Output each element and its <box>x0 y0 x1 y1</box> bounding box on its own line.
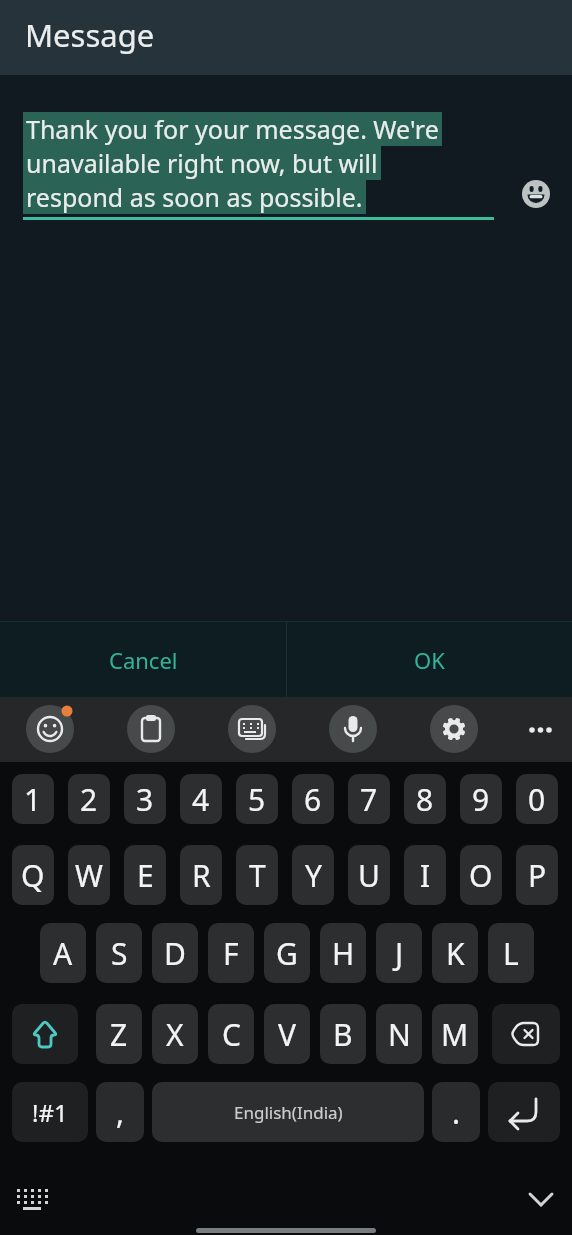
staticText: 3 <box>136 779 154 820</box>
staticText: P <box>528 855 547 896</box>
button[interactable] <box>492 1004 560 1064</box>
button[interactable] <box>228 705 276 753</box>
staticText: unavailable right now, but will <box>26 146 378 180</box>
button[interactable]: 6 <box>292 774 334 824</box>
button[interactable]: U <box>348 845 390 905</box>
staticText: U <box>358 855 380 896</box>
button[interactable]: W <box>68 845 110 905</box>
staticText: O <box>469 855 493 896</box>
staticText: 8 <box>416 779 434 820</box>
staticText: 0 <box>528 779 546 820</box>
button[interactable]: Y <box>292 845 334 905</box>
button[interactable] <box>12 1004 78 1064</box>
staticText: 7 <box>360 779 378 820</box>
button[interactable]: OK <box>287 622 572 697</box>
button[interactable]: Cancel <box>0 622 286 697</box>
staticText: Cancel <box>109 645 178 675</box>
staticText: S <box>111 933 128 974</box>
staticText: G <box>276 933 298 974</box>
staticText: OK <box>414 645 445 675</box>
staticText: Thank you for your message. We're <box>26 112 439 146</box>
button[interactable]: 4 <box>180 774 222 824</box>
button[interactable]: V <box>264 1004 310 1064</box>
staticText: D <box>164 933 186 974</box>
button[interactable]: K <box>432 923 478 983</box>
button[interactable]: M <box>432 1004 478 1064</box>
button[interactable] <box>329 705 377 753</box>
button[interactable]: O <box>460 845 502 905</box>
staticText: respond as soon as possible. <box>26 180 363 214</box>
staticText: V <box>278 1014 296 1055</box>
staticText: . <box>452 1092 461 1133</box>
button[interactable] <box>430 705 478 753</box>
staticText: I <box>420 855 431 896</box>
staticText: Y <box>305 855 322 896</box>
staticText: !#1 <box>32 1096 68 1129</box>
button[interactable]: , <box>96 1082 144 1142</box>
button[interactable]: S <box>96 923 142 983</box>
button[interactable]: 7 <box>348 774 390 824</box>
button[interactable] <box>26 705 74 753</box>
staticText: English(India) <box>234 1101 343 1124</box>
staticText: 1 <box>24 779 42 820</box>
button[interactable]: E <box>124 845 166 905</box>
staticText: Message <box>25 14 155 56</box>
staticText: , <box>116 1092 125 1133</box>
button[interactable]: J <box>376 923 422 983</box>
staticText: W <box>75 855 103 896</box>
staticText: X <box>166 1014 184 1055</box>
button[interactable] <box>488 1082 560 1142</box>
button[interactable]: 5 <box>236 774 278 824</box>
button[interactable]: 8 <box>404 774 446 824</box>
staticText: F <box>223 933 239 974</box>
button[interactable]: D <box>152 923 198 983</box>
button[interactable] <box>519 1176 563 1220</box>
button[interactable]: H <box>320 923 366 983</box>
button[interactable]: P <box>516 845 558 905</box>
staticText: 5 <box>248 779 266 820</box>
button[interactable]: 3 <box>124 774 166 824</box>
button[interactable] <box>127 705 175 753</box>
button[interactable]: . <box>432 1082 480 1142</box>
button[interactable]: N <box>376 1004 422 1064</box>
button[interactable]: R <box>180 845 222 905</box>
button[interactable]: G <box>264 923 310 983</box>
staticText: 6 <box>304 779 322 820</box>
staticText: R <box>192 855 211 896</box>
button[interactable]: C <box>208 1004 254 1064</box>
button[interactable]: F <box>208 923 254 983</box>
button[interactable]: B <box>320 1004 366 1064</box>
button[interactable]: I <box>404 845 446 905</box>
staticText: T <box>249 855 266 896</box>
staticText: B <box>333 1014 353 1055</box>
staticText: J <box>395 933 404 974</box>
staticText: 9 <box>472 779 490 820</box>
staticText: Q <box>21 855 45 896</box>
staticText: L <box>503 933 519 974</box>
staticText: Z <box>110 1014 128 1055</box>
button[interactable] <box>10 1178 54 1222</box>
button[interactable]: 1 <box>12 774 54 824</box>
staticText: N <box>388 1014 411 1055</box>
button[interactable]: 2 <box>68 774 110 824</box>
button[interactable] <box>516 705 564 753</box>
button[interactable]: English(India) <box>152 1082 424 1142</box>
button[interactable]: Q <box>12 845 54 905</box>
button[interactable]: L <box>488 923 534 983</box>
button[interactable]: A <box>40 923 86 983</box>
button[interactable]: !#1 <box>12 1082 88 1142</box>
staticText: C <box>222 1014 241 1055</box>
button[interactable]: T <box>236 845 278 905</box>
button[interactable]: X <box>152 1004 198 1064</box>
staticText: K <box>446 933 465 974</box>
button[interactable]: 0 <box>516 774 558 824</box>
staticText: E <box>137 855 154 896</box>
staticText: 4 <box>192 779 210 820</box>
button[interactable]: Z <box>96 1004 142 1064</box>
staticText: 2 <box>80 779 98 820</box>
staticText: M <box>441 1014 469 1055</box>
staticText: H <box>332 933 355 974</box>
button[interactable]: 9 <box>460 774 502 824</box>
staticText: A <box>53 933 73 974</box>
